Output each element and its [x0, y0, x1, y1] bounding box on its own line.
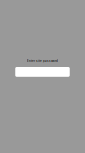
button[interactable]: Site password — [15, 67, 70, 77]
staticText: Enter site password — [27, 59, 58, 63]
